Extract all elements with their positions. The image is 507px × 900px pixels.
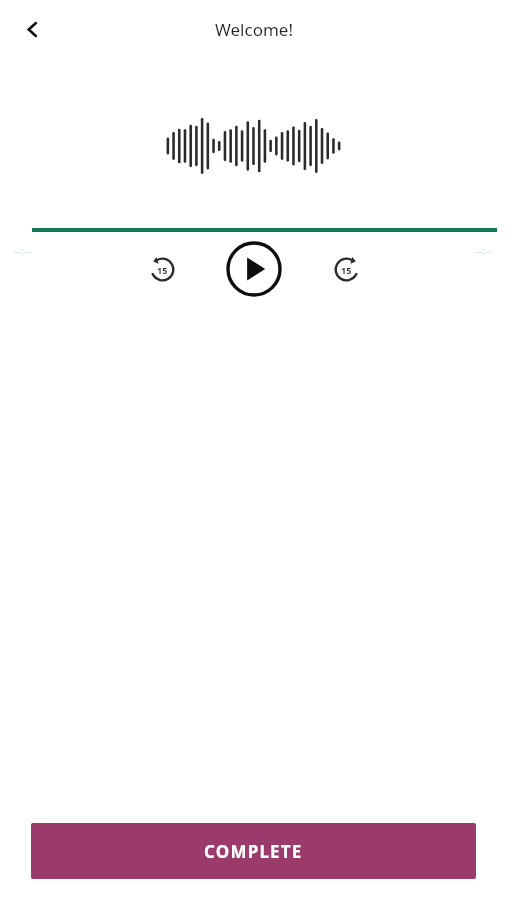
- staticText: --:--: [475, 243, 493, 258]
- staticText: COMPLETE: [204, 840, 303, 863]
- button[interactable]: Play: [225, 240, 283, 298]
- staticText: 15: [157, 264, 168, 276]
- button[interactable]: Forward 15 seconds: [323, 246, 369, 292]
- button[interactable]: Back: [13, 10, 51, 48]
- staticText: Welcome!: [215, 18, 293, 41]
- button[interactable]: Seek bar: [0, 226, 507, 234]
- button[interactable]: COMPLETE: [31, 823, 476, 879]
- staticText: 15: [341, 264, 352, 276]
- staticText: --:--: [14, 243, 32, 258]
- button[interactable]: Rewind 15 seconds: [139, 246, 185, 292]
